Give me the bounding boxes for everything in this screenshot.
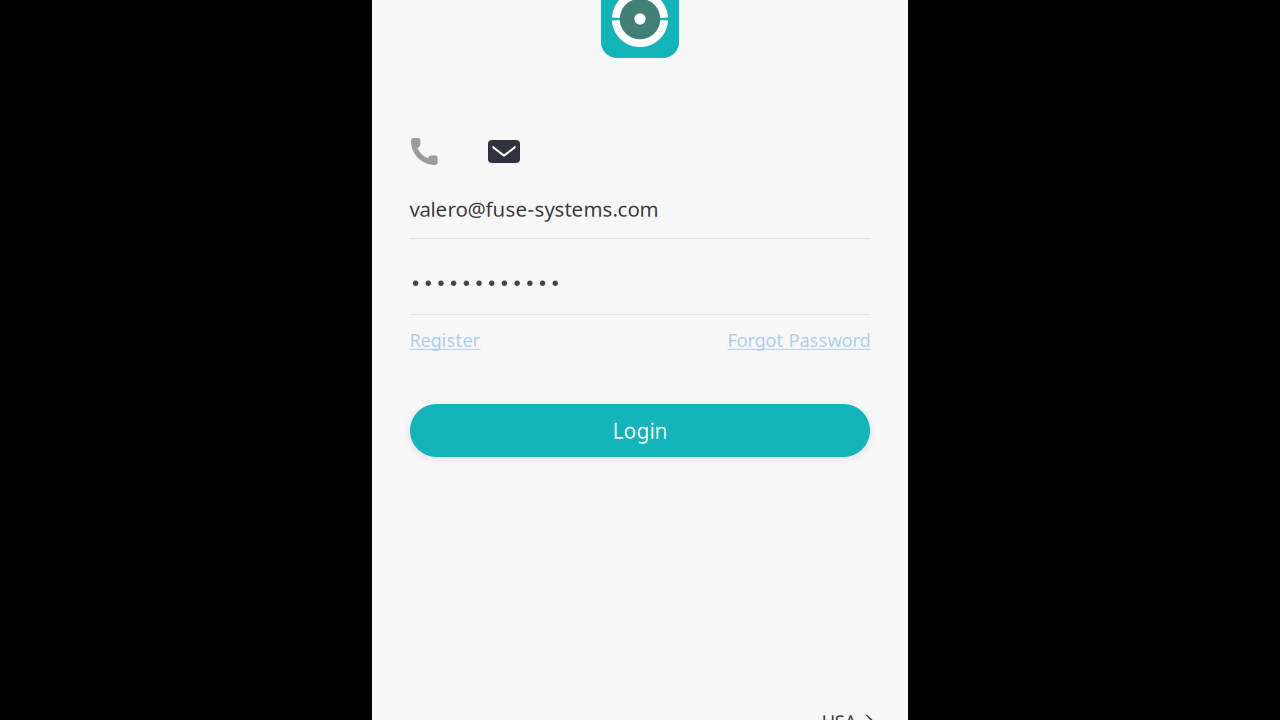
button[interactable]: Register bbox=[409, 327, 480, 352]
staticText: Forgot Password bbox=[727, 327, 870, 352]
button[interactable]: USA bbox=[822, 709, 876, 720]
button[interactable]: Sign in with email bbox=[482, 129, 526, 173]
staticText: Login bbox=[612, 416, 667, 445]
staticText: Register bbox=[409, 327, 480, 352]
staticText: valero@fuse-systems.com bbox=[410, 195, 659, 223]
button[interactable]: Forgot Password bbox=[727, 327, 870, 352]
button[interactable]: Sign in with phone number bbox=[402, 129, 446, 173]
button[interactable]: Login bbox=[410, 404, 870, 457]
staticText: USA bbox=[822, 709, 857, 720]
button[interactable]: Email address bbox=[410, 186, 870, 239]
button[interactable]: Password bbox=[410, 266, 870, 315]
